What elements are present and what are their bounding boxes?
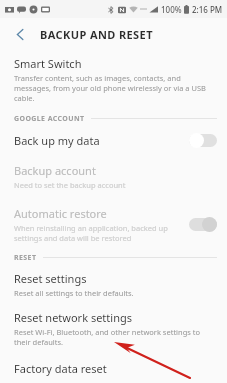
staticText: Backup account: [14, 163, 96, 178]
staticText: 2:16 PM: [192, 4, 223, 15]
staticText: Reset all settings to their defaults.: [14, 288, 134, 298]
staticText: Reset settings: [14, 271, 87, 286]
button[interactable]: Back up my data: [0, 127, 227, 154]
staticText: Transfer content, such as images, contac…: [14, 73, 213, 103]
staticText: Factory data reset: [14, 361, 107, 376]
staticText: When reinstalling an application, backed…: [14, 223, 183, 243]
staticText: Need to set the backup account: [14, 180, 126, 190]
button[interactable]: Smart Switch: [0, 50, 227, 110]
staticText: GOOGLE ACCOUNT: [14, 114, 85, 124]
button[interactable]: Automatic restore: [0, 200, 227, 249]
staticText: Reset Wi-Fi, Bluetooth, and other networ…: [14, 327, 213, 347]
button[interactable]: Reset network settings: [0, 306, 227, 355]
other: Back up my data: [189, 133, 217, 148]
staticText: Automatic restore: [14, 206, 107, 221]
other: Automatic restore: [189, 217, 217, 232]
staticText: Smart Switch: [14, 56, 82, 71]
staticText: RESET: [14, 253, 37, 263]
staticText: Back up my data: [14, 133, 100, 148]
button[interactable]: Back: [0, 18, 40, 50]
staticText: 100%: [161, 4, 182, 15]
staticText: Reset network settings: [14, 310, 132, 325]
button[interactable]: Reset settings: [0, 266, 227, 306]
button[interactable]: Factory data reset: [0, 355, 227, 382]
button[interactable]: Backup account: [0, 159, 227, 196]
staticText: BACKUP AND RESET: [40, 27, 153, 42]
